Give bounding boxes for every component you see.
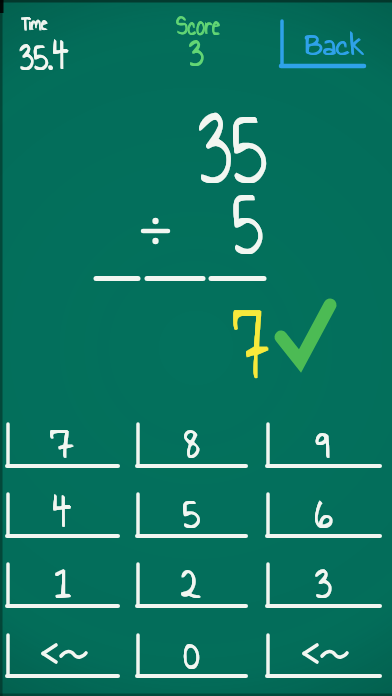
staticText: Score: [176, 5, 220, 45]
staticText: 5: [183, 477, 200, 547]
button[interactable]: [266, 424, 380, 468]
staticText: 3: [314, 547, 331, 617]
staticText: 9: [316, 408, 332, 478]
staticText: 2: [181, 548, 201, 618]
staticText: 5: [232, 140, 263, 298]
staticText: 7: [51, 408, 75, 478]
staticText: 35.4: [19, 23, 68, 88]
staticText: Back: [304, 22, 364, 68]
staticText: 9: [315, 407, 331, 477]
staticText: 35.4: [20, 24, 69, 89]
staticText: 3: [314, 548, 331, 618]
staticText: 5: [183, 478, 200, 548]
staticText: 0: [182, 619, 199, 689]
staticText: 7: [234, 252, 270, 428]
staticText: 1: [54, 547, 70, 617]
staticText: 6: [315, 478, 332, 548]
staticText: 4: [53, 477, 71, 547]
staticText: 2: [181, 547, 201, 617]
staticText: 35.4: [19, 24, 68, 89]
staticText: 35: [197, 57, 267, 233]
staticText: 1: [55, 548, 71, 618]
staticText: 3: [188, 21, 204, 84]
staticText: 4: [53, 478, 71, 548]
staticText: 6: [316, 478, 333, 548]
staticText: 6: [315, 477, 332, 547]
button[interactable]: [6, 635, 118, 678]
button[interactable]: [266, 564, 380, 608]
button[interactable]: [6, 424, 118, 468]
staticText: Time: [21, 10, 47, 39]
button[interactable]: [136, 424, 246, 468]
staticText: Back: [304, 21, 364, 67]
button[interactable]: [266, 635, 380, 678]
button[interactable]: [272, 12, 372, 74]
staticText: 7: [50, 408, 74, 478]
staticText: 4: [54, 478, 72, 548]
staticText: Back: [305, 22, 365, 68]
staticText: 8: [184, 408, 200, 478]
staticText: 0: [182, 618, 199, 688]
staticText: 5: [184, 478, 201, 548]
staticText: 35: [197, 56, 267, 232]
staticText: 35: [198, 57, 268, 233]
staticText: 8: [183, 407, 199, 477]
staticText: 1: [54, 548, 70, 618]
button[interactable]: [266, 494, 380, 538]
button[interactable]: [136, 564, 246, 608]
button[interactable]: [136, 494, 246, 538]
staticText: 0: [183, 619, 200, 689]
staticText: Score: [177, 6, 221, 46]
staticText: 8: [183, 408, 199, 478]
staticText: 3: [188, 20, 204, 83]
staticText: 7: [50, 407, 74, 477]
staticText: Score: [176, 6, 220, 46]
staticText: 7: [233, 252, 269, 428]
staticText: Time: [22, 10, 48, 39]
staticText: Time: [21, 9, 47, 38]
staticText: 9: [315, 408, 331, 478]
staticText: 7: [233, 251, 269, 427]
button[interactable]: [136, 635, 246, 678]
staticText: 5: [233, 141, 264, 299]
staticText: 2: [182, 548, 202, 618]
staticText: 5: [232, 141, 263, 299]
staticText: 3: [315, 548, 332, 618]
staticText: 3: [189, 21, 205, 84]
button[interactable]: [6, 494, 118, 538]
button[interactable]: [6, 564, 118, 608]
